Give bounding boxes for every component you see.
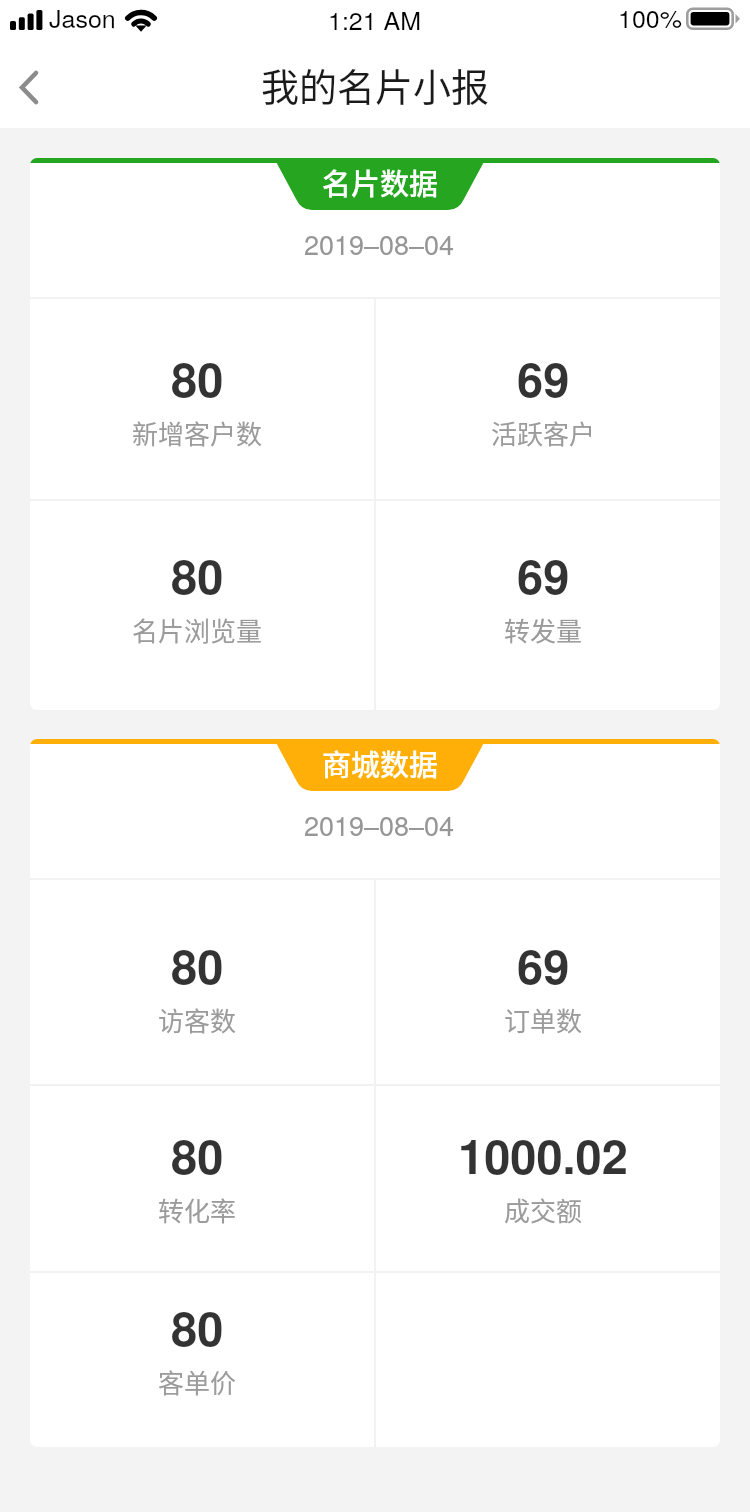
button[interactable]: 69 [376,880,720,1084]
staticText: 转发量 [504,611,583,649]
button[interactable]: 69 [376,299,720,499]
staticText: 80 [171,1293,224,1360]
button[interactable]: 80 [30,1273,374,1447]
staticText: 新增客户数 [132,414,263,452]
staticText: 2019–08–04 [304,224,455,263]
staticText: 活跃客户 [491,414,596,452]
staticText: 1:21 AM [328,1,422,37]
staticText: 69 [517,931,570,998]
button[interactable]: 80 [30,299,374,499]
button[interactable]: 80 [30,880,374,1084]
other: Battery full [686,7,740,31]
staticText: 69 [517,344,570,411]
staticText: 成交额 [504,1191,583,1229]
button[interactable]: 80 [30,501,374,710]
staticText: Jason [49,0,116,35]
other: Cellular signal [10,9,44,30]
staticText: 100% [618,0,682,35]
staticText: 80 [171,541,224,608]
staticText: 2019–08–04 [304,805,455,844]
button[interactable]: 1000.02 [376,1086,720,1271]
staticText: 客单价 [158,1363,237,1401]
staticText: 访客数 [158,1001,237,1039]
staticText: 名片数据 [322,161,439,203]
staticText: 80 [171,1121,224,1188]
staticText: 订单数 [504,1001,583,1039]
button[interactable]: 69 [376,501,720,710]
staticText: 1000.02 [458,1121,628,1188]
staticText: 69 [517,541,570,608]
other: Wi-Fi [124,8,158,32]
staticText: 我的名片小报 [261,57,490,112]
staticText: 名片浏览量 [132,611,263,649]
staticText: 转化率 [158,1191,237,1229]
button[interactable]: Back [0,52,60,124]
staticText: 商城数据 [322,742,439,784]
staticText: 80 [171,344,224,411]
button[interactable]: 80 [30,1086,374,1271]
staticText: 80 [171,931,224,998]
